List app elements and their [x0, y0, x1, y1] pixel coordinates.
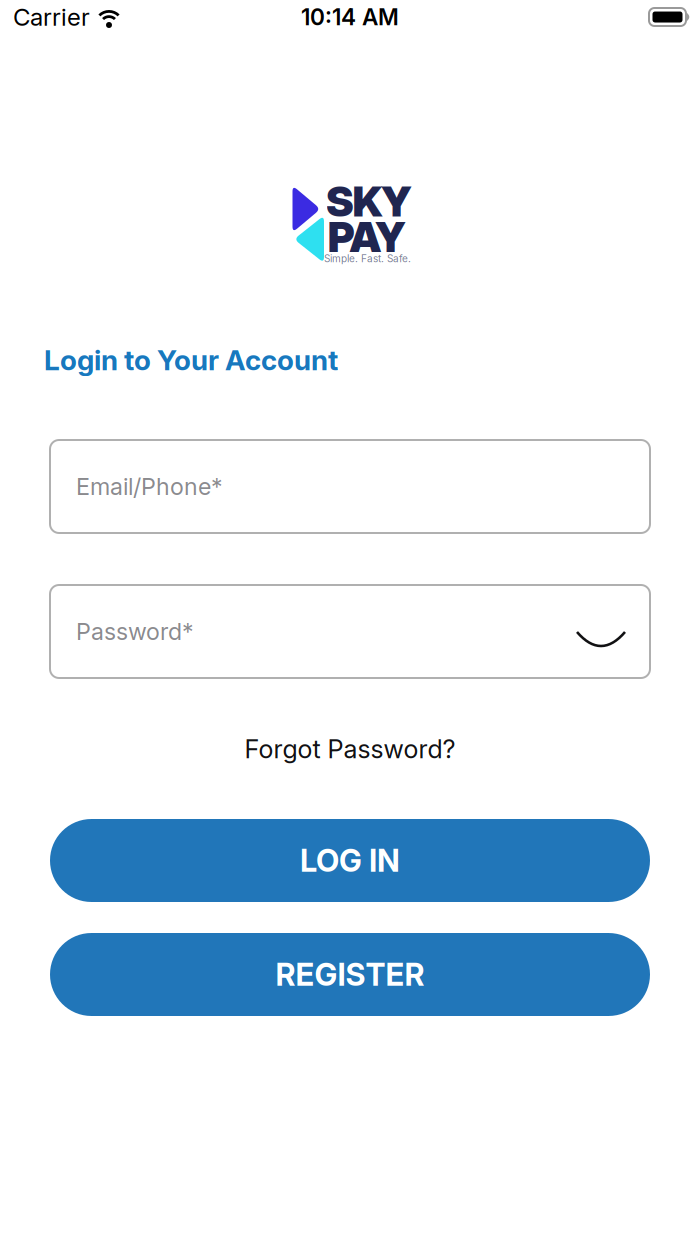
staticText: 10:14 AM: [301, 3, 399, 31]
button[interactable]: REGISTER: [50, 933, 650, 1016]
button[interactable]: Show password: [576, 616, 626, 646]
button[interactable]: Forgot Password?: [244, 737, 455, 761]
button[interactable]: Password*: [50, 585, 650, 678]
staticText: SKY: [326, 176, 411, 226]
staticText: Password*: [76, 617, 194, 646]
staticText: Simple. Fast. Safe.: [324, 252, 411, 265]
staticText: Carrier: [13, 2, 90, 31]
staticText: REGISTER: [275, 956, 424, 993]
staticText: Forgot Password?: [244, 734, 455, 764]
staticText: PAY: [328, 212, 405, 262]
button[interactable]: Email/Phone*: [50, 440, 650, 533]
staticText: Login to Your Account: [44, 343, 338, 377]
staticText: LOG IN: [300, 842, 400, 879]
staticText: Email/Phone*: [76, 472, 223, 501]
button[interactable]: LOG IN: [50, 819, 650, 902]
